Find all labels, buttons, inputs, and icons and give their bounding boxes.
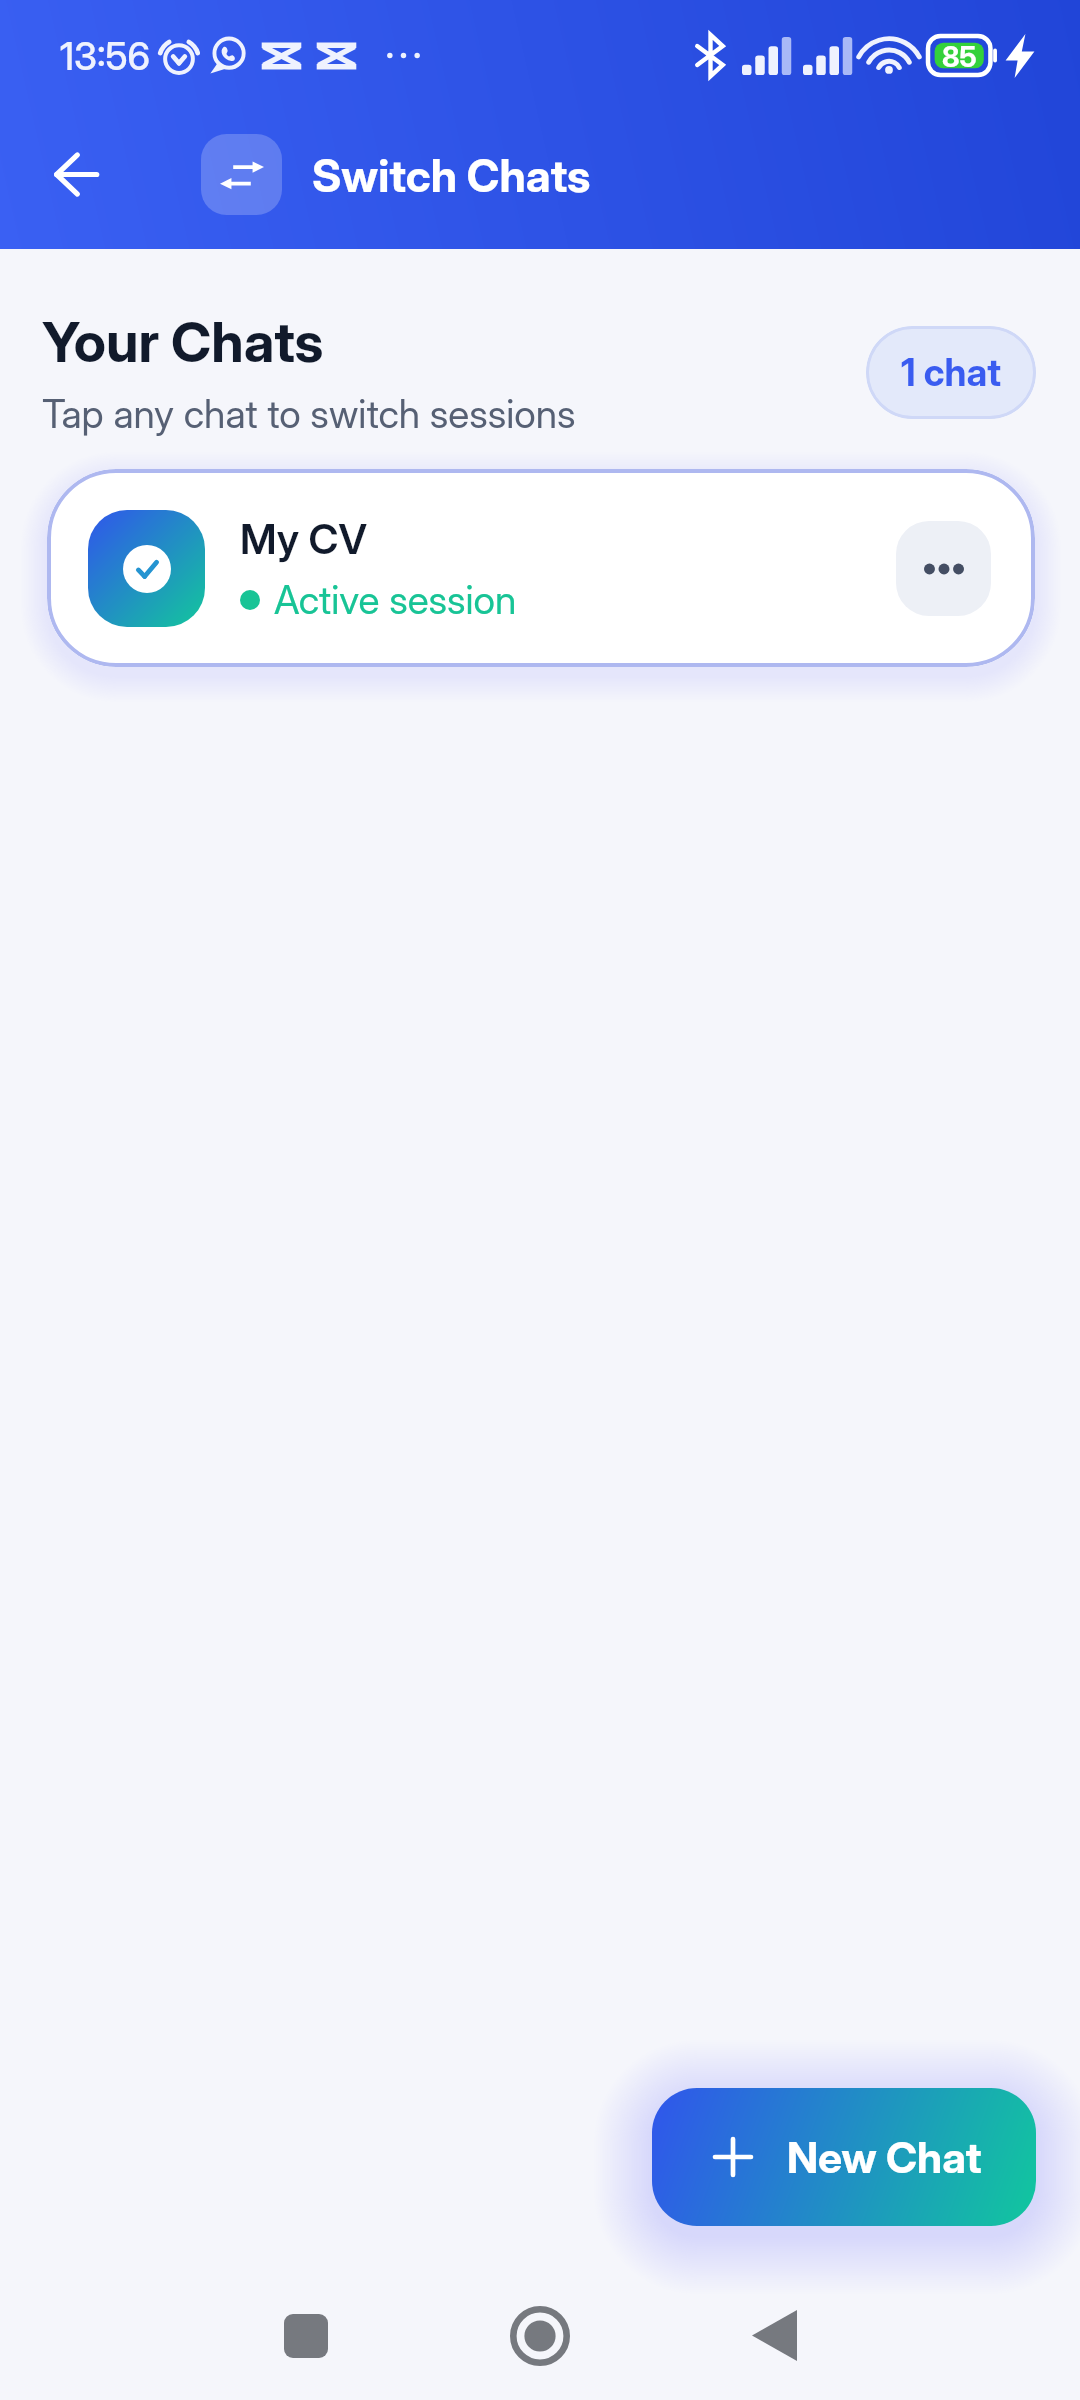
staticText: New Chat — [787, 2131, 982, 2183]
staticText: 1 chat — [901, 350, 1001, 395]
staticText: Your Chats — [42, 308, 324, 375]
button[interactable]: Back — [657, 2289, 891, 2382]
button[interactable]: New Chat — [652, 2088, 1036, 2226]
staticText: Switch Chats — [312, 148, 591, 202]
staticText: My CV — [240, 514, 367, 564]
staticText: 13:56 — [60, 33, 151, 79]
staticText: Active session — [274, 576, 517, 623]
staticText: Tap any chat to switch sessions — [42, 390, 576, 437]
button[interactable]: More options — [896, 521, 991, 616]
button[interactable]: 1 chat — [866, 326, 1036, 419]
staticText: 85 — [942, 39, 977, 73]
button[interactable]: Recent apps — [189, 2289, 423, 2382]
button[interactable]: My CV — [47, 469, 1035, 667]
button[interactable]: Home — [423, 2289, 657, 2382]
button[interactable]: Back — [12, 113, 141, 236]
